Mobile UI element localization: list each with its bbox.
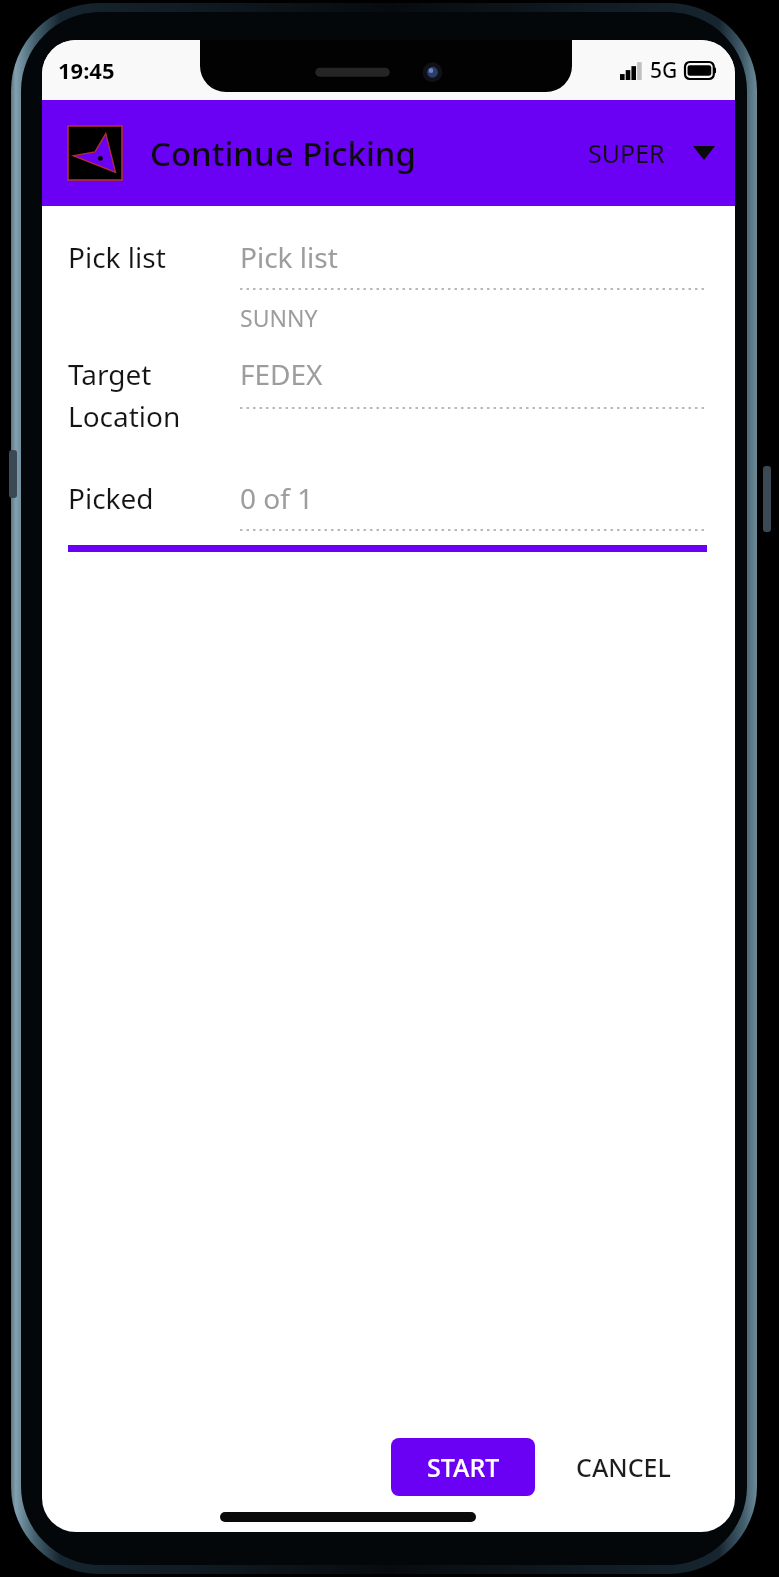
staticText: SUNNY [240, 302, 318, 333]
staticText: Picked [68, 479, 154, 517]
staticText: Continue Picking [150, 131, 417, 176]
button[interactable]: SUPER [588, 136, 735, 170]
staticText: 19:45 [58, 55, 115, 85]
staticText: SUPER [588, 136, 665, 170]
staticText: Target [68, 355, 152, 393]
button[interactable]: Target [42, 355, 735, 435]
button[interactable]: Picked [42, 479, 735, 531]
staticText: FEDEX [240, 355, 323, 393]
staticText: 0 of 1 [240, 479, 314, 517]
staticText: CANCEL [576, 1450, 671, 1484]
button[interactable]: Pick list [42, 228, 735, 333]
staticText: 5G [650, 56, 678, 85]
button[interactable]: CANCEL [542, 1438, 705, 1496]
staticText: Location [68, 397, 181, 435]
staticText: Pick list [68, 238, 166, 276]
staticText: START [427, 1450, 500, 1484]
button[interactable]: START [391, 1438, 535, 1496]
staticText: Pick list [240, 238, 338, 276]
button[interactable]: App logo [68, 126, 122, 180]
